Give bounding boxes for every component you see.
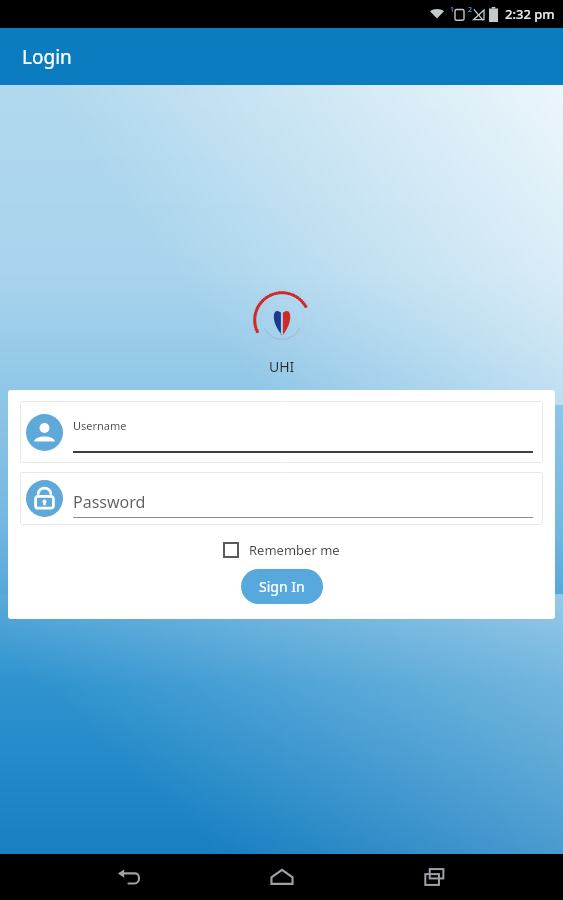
staticText: 2:32 pm: [505, 5, 555, 23]
staticText: Sign In: [259, 577, 305, 596]
button[interactable]: Recent apps: [409, 854, 461, 900]
staticText: UHI: [269, 357, 295, 376]
staticText: Username: [73, 418, 127, 433]
staticText: Password: [73, 491, 146, 513]
button[interactable]: Sign In: [241, 569, 323, 604]
button[interactable]: Username: [20, 401, 543, 463]
button[interactable]: Home: [256, 854, 308, 900]
staticText: 2: [468, 5, 473, 15]
staticText: 1: [450, 5, 455, 15]
button[interactable]: Remember me: [219, 537, 344, 563]
button[interactable]: Password: [20, 472, 543, 525]
button[interactable]: Back: [102, 854, 154, 900]
staticText: Remember me: [249, 541, 340, 559]
other: Password: [26, 480, 63, 517]
other: Username: [26, 414, 63, 451]
staticText: Login: [22, 44, 72, 70]
